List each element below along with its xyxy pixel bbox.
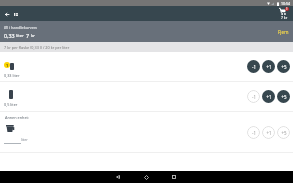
button[interactable]: +5 [277,90,290,103]
button[interactable]: Back [104,171,132,183]
button[interactable]: +1 [262,90,275,103]
staticText: 0,33 [4,32,15,39]
staticText: 7 kr per flaske (0,33 l) / 20 kr per lit… [4,45,70,50]
staticText: liter [16,33,24,39]
staticText: +5 [281,94,287,100]
button[interactable]: +5 [277,126,290,139]
staticText: Annen enhet: [5,115,29,120]
staticText: -1 [252,64,256,70]
staticText: -1 [252,94,256,100]
staticText: kr [31,33,35,39]
button[interactable]: Shopping cart [278,8,290,20]
button[interactable]: Annen enhet: [0,112,293,152]
button[interactable]: 0,5 liter [0,82,293,111]
button[interactable]: -1 [247,126,260,139]
staticText: 7 kr [281,15,288,20]
staticText: +5 [281,130,287,136]
button[interactable]: -1 [247,60,260,73]
staticText: +1 [266,94,272,100]
button[interactable]: +5 [277,60,290,73]
button[interactable]: -1 [247,90,260,103]
button[interactable]: Recents [160,171,188,183]
staticText: 1 [6,63,9,68]
staticText: 10:54 [281,1,290,6]
staticText: 7 [26,32,30,39]
button[interactable]: Fjern [276,27,291,37]
staticText: Fjern [278,29,289,35]
staticText: 0,5 liter [4,102,18,107]
staticText: 1 [286,7,288,11]
staticText: +1 [266,64,272,70]
button[interactable]: App logo [11,9,21,19]
button[interactable]: 1 [0,52,293,81]
staticText: 0,33 liter [4,73,20,78]
button[interactable]: +1 [262,126,275,139]
button[interactable]: Home [132,171,160,183]
staticText: liter [21,137,28,142]
staticText: +5 [281,64,287,70]
staticText: +1 [266,130,272,136]
button[interactable]: +1 [262,60,275,73]
staticText: -1 [252,130,256,136]
staticText: Øl i handlekurven: [4,25,38,30]
button[interactable]: Back [2,9,12,19]
